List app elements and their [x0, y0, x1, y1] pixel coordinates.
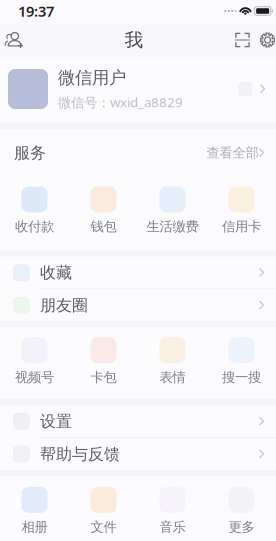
staticText: 信用卡 [222, 218, 261, 235]
staticText: 服务 [14, 143, 46, 163]
staticText: 我 [124, 28, 143, 51]
button[interactable]: 搜一搜 [207, 333, 276, 389]
button[interactable]: 视频号 [0, 333, 69, 389]
staticText: 卡包 [90, 369, 116, 386]
staticText: 钱包 [90, 218, 116, 235]
button[interactable]: 帮助与反馈 [0, 438, 276, 470]
staticText: 视频号 [15, 369, 54, 386]
staticText: 查看全部 [206, 145, 258, 161]
button[interactable]: 微信用户 [0, 58, 276, 123]
button[interactable]: 音乐 [138, 483, 207, 539]
button[interactable]: Scan QR code [226, 22, 259, 58]
staticText: 微信用户 [58, 67, 126, 88]
staticText: 相册 [21, 519, 47, 535]
staticText: 表情 [159, 369, 185, 386]
button[interactable]: 文件 [69, 483, 138, 539]
staticText: 搜一搜 [222, 369, 261, 386]
staticText: 生活缴费 [146, 218, 198, 235]
staticText: 收藏 [40, 263, 72, 282]
button[interactable]: 卡包 [69, 333, 138, 389]
button[interactable]: Settings [259, 22, 276, 58]
button[interactable]: 设置 [0, 405, 276, 437]
staticText: 帮助与反馈 [40, 444, 120, 464]
staticText: 更多 [228, 519, 254, 535]
button[interactable]: Add contact [0, 22, 28, 58]
button[interactable]: 信用卡 [207, 183, 276, 239]
staticText: 设置 [40, 411, 72, 431]
staticText: 文件 [90, 519, 116, 535]
staticText: 微信号：wxid_a8829 [58, 93, 183, 111]
button[interactable]: 朋友圈 [0, 289, 276, 321]
staticText: 音乐 [159, 519, 185, 535]
staticText: 收付款 [15, 218, 54, 235]
button[interactable]: 收付款 [0, 183, 69, 239]
staticText: 朋友圈 [40, 295, 88, 315]
button[interactable]: 相册 [0, 483, 69, 539]
staticText: 19:37 [18, 1, 54, 21]
button[interactable]: 更多 [207, 483, 276, 539]
button[interactable]: 收藏 [0, 257, 276, 289]
button[interactable]: 表情 [138, 333, 207, 389]
button[interactable]: 生活缴费 [138, 183, 207, 239]
button[interactable]: 钱包 [69, 183, 138, 239]
